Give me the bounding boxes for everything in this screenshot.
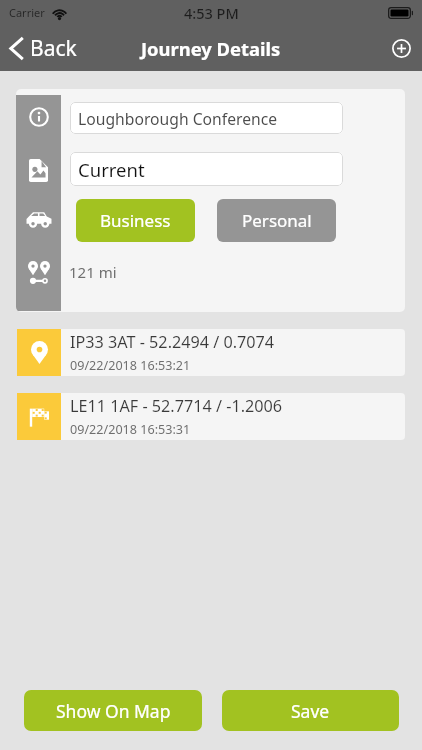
button[interactable]: Business [76,199,195,242]
staticText: 4:53 PM [184,3,239,23]
staticText: 09/22/2018 16:53:21 [70,357,191,374]
staticText: Business [100,209,171,232]
button[interactable]: Show On Map [24,690,202,731]
button[interactable]: Add journey [382,29,422,68]
button[interactable]: Personal [217,199,336,242]
staticText: Carrier [9,5,45,20]
staticText: Current [78,157,145,182]
button[interactable]: Loughborough Conference [70,102,343,134]
button[interactable]: Current [70,152,343,186]
staticText: Loughborough Conference [78,108,278,129]
staticText: Back [30,34,77,63]
staticText: 121 mi [69,262,117,282]
staticText: Show On Map [56,699,171,723]
staticText: Journey Details [141,36,281,61]
button[interactable]: IP33 3AT - 52.2494 / 0.7074 [17,329,405,376]
staticText: 09/22/2018 16:53:31 [70,421,191,438]
staticText: IP33 3AT - 52.2494 / 0.7074 [70,331,275,353]
button[interactable]: LE11 1AF - 52.7714 / -1.2006 [17,393,405,440]
staticText: LE11 1AF - 52.7714 / -1.2006 [70,395,283,417]
staticText: Save [291,699,330,723]
staticText: Personal [242,209,312,232]
button[interactable]: Back [0,28,89,69]
button[interactable]: Save [222,690,399,731]
